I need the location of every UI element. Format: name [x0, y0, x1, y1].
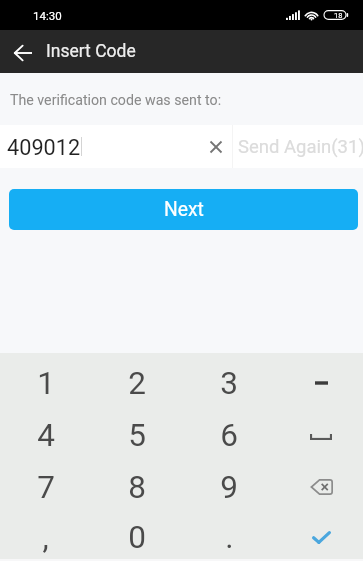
staticText: 5	[128, 417, 146, 454]
button[interactable]: Back	[0, 30, 46, 73]
staticText: Next	[164, 198, 204, 221]
staticText: The verification code was sent to:	[10, 92, 222, 109]
staticText: 14:30	[33, 9, 62, 22]
button[interactable]	[275, 461, 363, 513]
staticText: 6	[220, 417, 238, 454]
button[interactable]: 0	[91, 513, 183, 561]
staticText: 0	[128, 519, 146, 556]
button[interactable]: 6	[183, 409, 275, 461]
staticText: 409012	[7, 135, 81, 160]
staticText: 4	[37, 417, 55, 454]
button[interactable]: Clear	[200, 125, 232, 168]
staticText: 18	[334, 11, 343, 20]
staticText: Insert Code	[46, 41, 136, 62]
button[interactable]	[275, 513, 363, 561]
staticText: 1	[37, 365, 55, 402]
button[interactable]: 9	[183, 461, 275, 513]
button[interactable]: 1	[0, 357, 91, 409]
button[interactable]	[275, 409, 363, 461]
button[interactable]: 7	[0, 461, 91, 513]
staticText: 2	[128, 365, 146, 402]
button[interactable]: ,	[0, 513, 91, 561]
staticText: 3	[220, 365, 238, 402]
staticText: Send Again(31)	[238, 136, 363, 158]
button[interactable]: 3	[183, 357, 275, 409]
button[interactable]: 2	[91, 357, 183, 409]
button[interactable]: 4	[0, 409, 91, 461]
button[interactable]	[275, 357, 363, 409]
staticText: .	[225, 519, 234, 556]
button[interactable]: 5	[91, 409, 183, 461]
button[interactable]: Next	[9, 189, 358, 230]
button[interactable]: .	[183, 513, 275, 561]
button[interactable]: 8	[91, 461, 183, 513]
staticText: 8	[128, 469, 146, 506]
button[interactable]: Send Again(31)	[233, 125, 363, 168]
staticText: ,	[42, 519, 49, 556]
staticText: 7	[37, 469, 55, 506]
staticText: 9	[220, 469, 238, 506]
